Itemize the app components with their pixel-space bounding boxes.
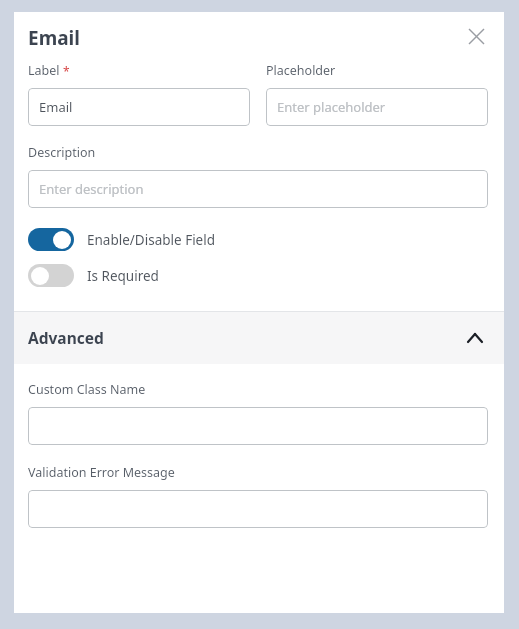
button[interactable]: Email [28, 88, 250, 126]
staticText: Email [39, 98, 73, 116]
staticText: Custom Class Name [28, 381, 146, 398]
staticText: Enable/Disable Field [87, 231, 216, 249]
staticText: Label [28, 62, 60, 79]
button[interactable]: Is Required [28, 264, 504, 287]
staticText: * [63, 63, 70, 79]
staticText: Placeholder [266, 62, 336, 79]
button[interactable]: Advanced [14, 311, 504, 364]
button[interactable] [28, 407, 488, 445]
button[interactable]: Enter description [28, 170, 488, 208]
staticText: Email [28, 25, 80, 51]
button[interactable]: Enter placeholder [266, 88, 488, 126]
button[interactable]: Close [460, 20, 492, 52]
button[interactable]: Enable/Disable Field [28, 228, 504, 251]
staticText: Is Required [87, 267, 159, 285]
staticText: Enter description [39, 180, 144, 198]
staticText: Enter placeholder [277, 98, 386, 116]
staticText: Validation Error Message [28, 464, 175, 481]
button[interactable] [28, 490, 488, 528]
staticText: Description [28, 144, 96, 161]
staticText: Advanced [28, 327, 104, 348]
